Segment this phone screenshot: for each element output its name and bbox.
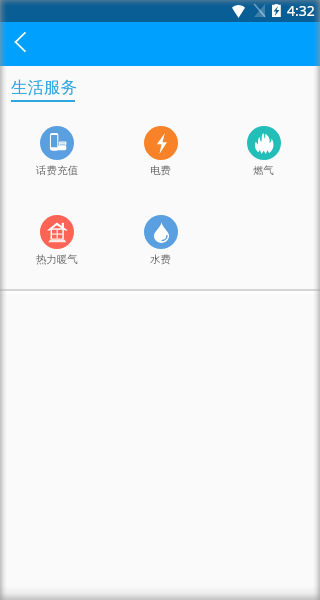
staticText: 4:32	[287, 1, 315, 20]
staticText: 话费充值	[36, 164, 78, 177]
staticText: 热力暖气	[36, 253, 78, 266]
staticText: 水费	[150, 253, 171, 266]
button[interactable]: 热力暖气	[5, 215, 109, 266]
button[interactable]: 电费	[109, 126, 212, 177]
staticText: 燃气	[253, 164, 274, 177]
button[interactable]: 燃气	[212, 126, 315, 177]
button[interactable]: 话费充值	[5, 126, 109, 177]
button[interactable]: Back	[1, 25, 39, 63]
staticText: 电费	[150, 164, 171, 177]
staticText: 生活服务	[11, 77, 77, 98]
button[interactable]: 水费	[109, 215, 212, 266]
